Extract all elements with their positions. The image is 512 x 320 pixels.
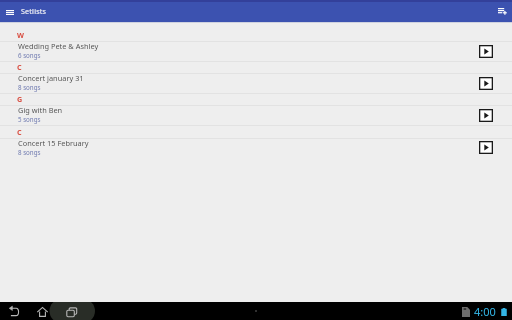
staticText: Concert 15 February	[18, 138, 89, 148]
button[interactable]: Add setlist	[493, 2, 511, 20]
button[interactable]: Play setlist	[477, 108, 494, 125]
staticText: 4:00	[474, 304, 496, 319]
staticText: 5 songs	[18, 115, 41, 123]
button[interactable]: Open navigation drawer	[2, 3, 18, 19]
button[interactable]: Play setlist	[477, 140, 494, 157]
button[interactable]: Concert january 31	[0, 74, 512, 94]
button[interactable]: Play setlist	[477, 76, 494, 93]
button[interactable]: Play setlist	[477, 44, 494, 61]
button[interactable]: Home	[33, 302, 52, 320]
button[interactable]: Recent apps	[62, 302, 81, 320]
staticText: Concert january 31	[18, 73, 84, 83]
staticText: G	[17, 94, 23, 104]
staticText: 6 songs	[18, 51, 41, 59]
staticText: Wedding Pete & Ashley	[18, 41, 99, 51]
staticText: 8 songs	[18, 83, 41, 91]
staticText: C	[17, 127, 22, 137]
staticText: W	[17, 30, 24, 40]
button[interactable]: Gig with Ben	[0, 106, 512, 126]
staticText: Gig with Ben	[18, 105, 63, 115]
staticText: Setlists	[21, 6, 47, 16]
button[interactable]: Back	[5, 302, 24, 320]
button[interactable]: Wedding Pete & Ashley	[0, 42, 512, 62]
staticText: C	[17, 62, 22, 72]
staticText: 8 songs	[18, 148, 41, 156]
button[interactable]: Concert 15 February	[0, 139, 512, 158]
